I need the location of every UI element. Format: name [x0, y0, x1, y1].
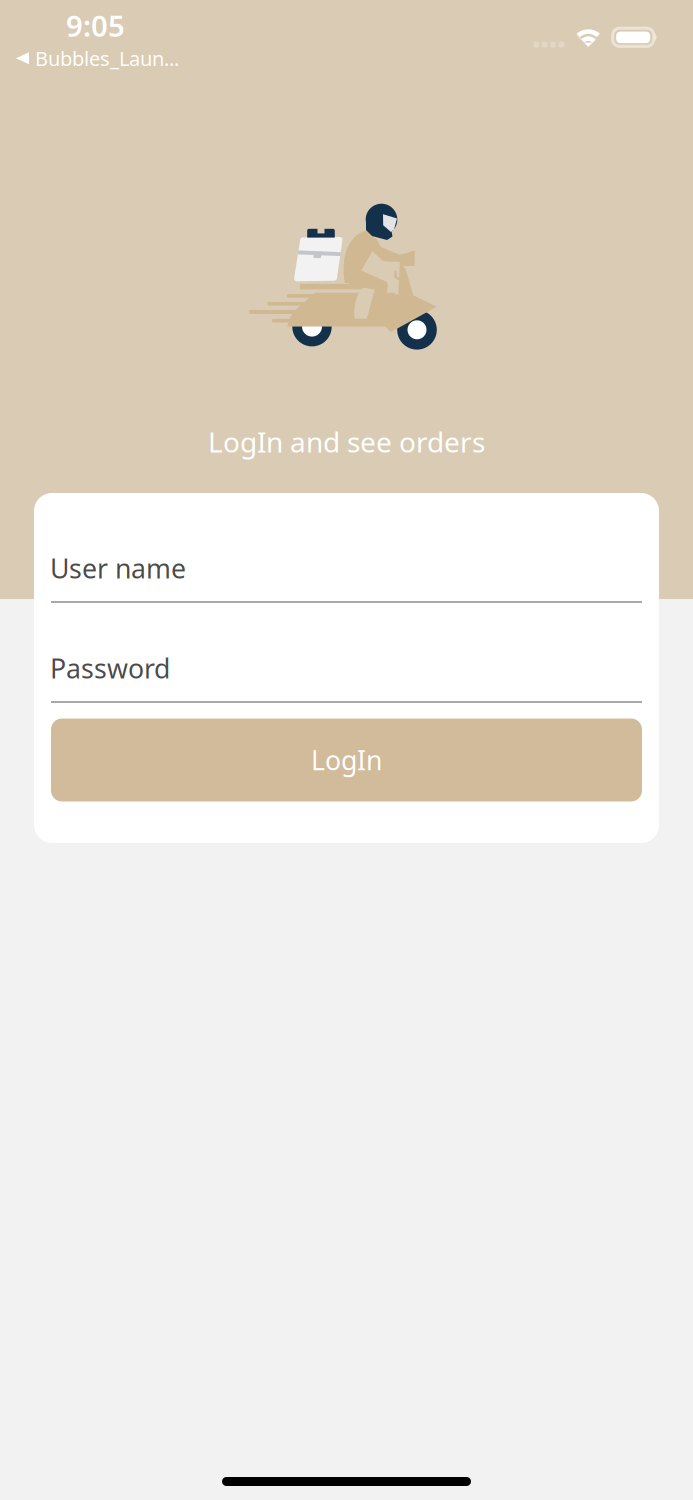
button[interactable]: User name — [51, 553, 642, 608]
staticText: Bubbles_Laun... — [35, 45, 179, 72]
staticText: LogIn and see orders — [208, 423, 485, 460]
staticText: LogIn — [311, 742, 382, 778]
staticText: User name — [50, 550, 186, 586]
button[interactable]: Back to Bubbles_Launcher — [16, 45, 179, 72]
button[interactable]: LogIn — [51, 718, 642, 801]
staticText: 9:05 — [66, 6, 125, 45]
button[interactable]: Password — [51, 653, 642, 708]
staticText: Password — [50, 650, 170, 686]
